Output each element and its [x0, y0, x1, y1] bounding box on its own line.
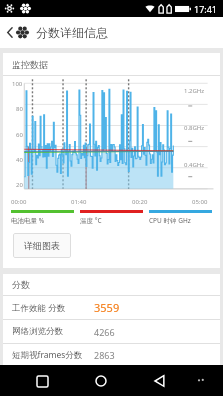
staticText: 60: [16, 131, 23, 139]
staticText: 2863: [94, 349, 115, 361]
staticText: 温度 °C: [80, 216, 102, 225]
staticText: 01:40: [71, 198, 87, 206]
staticText: 4266: [94, 326, 115, 338]
button[interactable]: Back: [5, 22, 31, 43]
staticText: 1.2GHz: [184, 87, 205, 95]
button[interactable]: 详细图表: [13, 233, 71, 258]
button[interactable]: 网络浏览分数: [3, 320, 220, 343]
staticText: 00:00: [11, 198, 27, 206]
staticText: 详细图表: [24, 240, 60, 251]
staticText: 短期视frames分数: [12, 349, 83, 361]
staticText: 0.8GHz: [184, 124, 205, 132]
staticText: 电池电量 %: [11, 216, 45, 225]
staticText: 20: [16, 181, 23, 189]
staticText: 00:20: [132, 198, 148, 206]
staticText: 工作效能 分数: [12, 302, 66, 314]
button[interactable]: Home: [88, 368, 114, 394]
button[interactable]: 短期视frames分数: [3, 344, 220, 365]
staticText: 网络浏览分数: [12, 326, 63, 337]
staticText: 40: [16, 156, 23, 164]
staticText: 分数详细信息: [36, 25, 108, 40]
button[interactable]: Back: [147, 368, 173, 394]
staticText: 05:00: [192, 198, 208, 206]
staticText: 17:41: [194, 3, 218, 15]
staticText: 0.4GHz: [184, 161, 205, 169]
staticText: 监控数据: [12, 59, 48, 70]
staticText: 100: [12, 80, 23, 88]
button[interactable]: Recents: [29, 368, 55, 394]
button[interactable]: 工作效能 分数: [3, 296, 220, 319]
button[interactable]: More: [191, 371, 211, 391]
staticText: 80: [16, 105, 23, 113]
staticText: CPU 时钟 GHz: [149, 216, 191, 225]
staticText: 分数: [12, 279, 30, 290]
staticText: 3559: [94, 300, 120, 315]
